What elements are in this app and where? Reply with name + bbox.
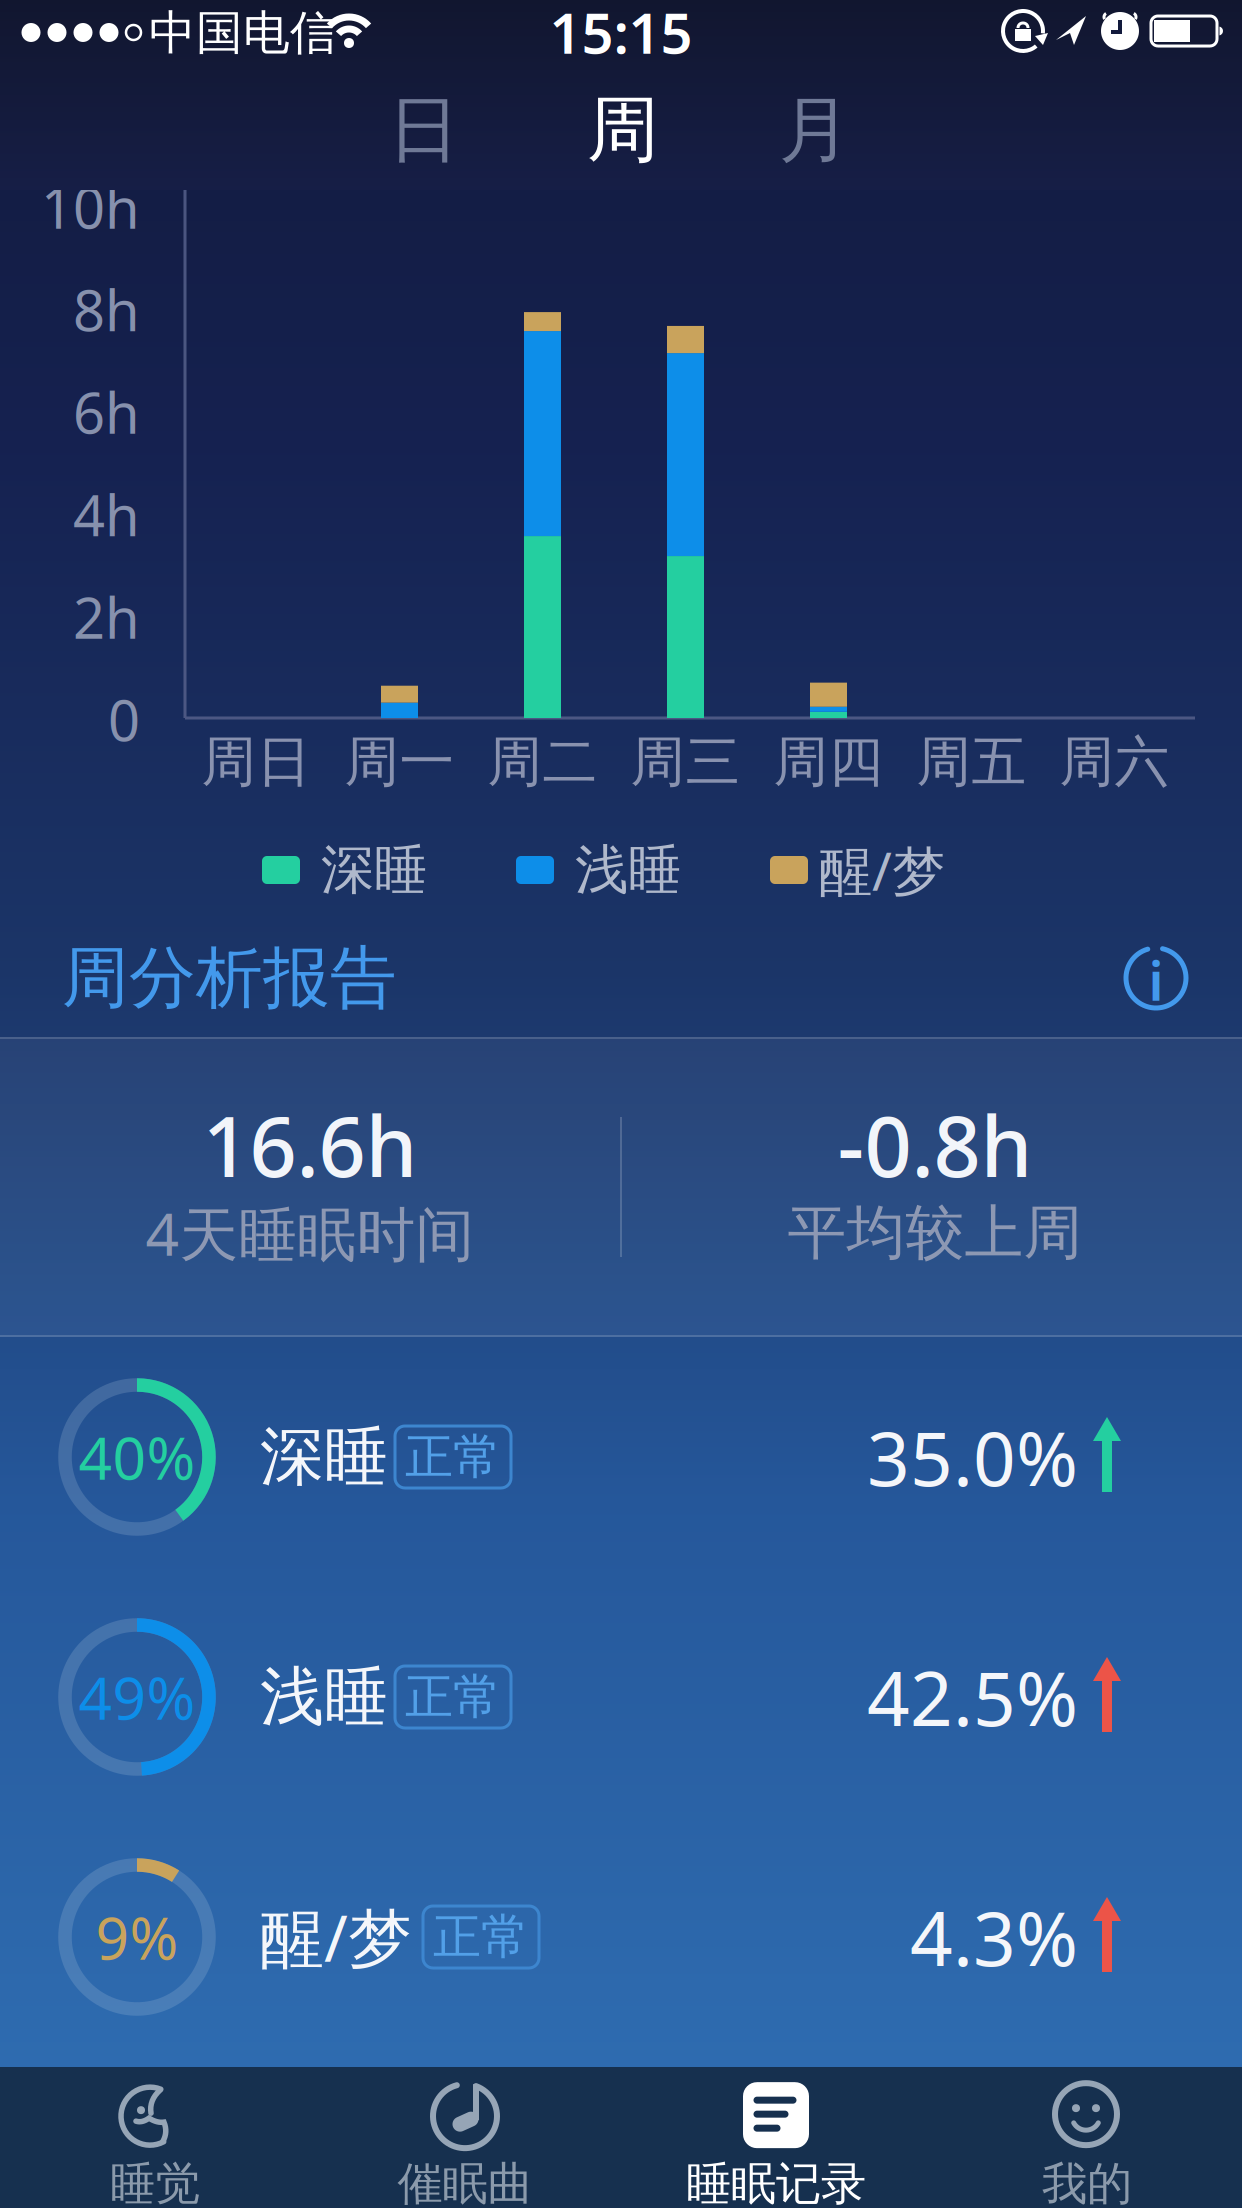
staticText: 49%	[78, 1658, 195, 1736]
staticText: 日	[388, 86, 460, 174]
staticText: 周日	[201, 728, 311, 795]
staticText: 16.6h	[202, 1090, 417, 1200]
staticText: 我的	[1042, 2156, 1132, 2208]
staticText: 月	[779, 86, 851, 174]
staticText: 40%	[78, 1418, 195, 1496]
staticText: 2h	[73, 580, 140, 654]
staticText: 4.3%	[910, 1887, 1078, 1987]
staticText: i	[1148, 945, 1163, 1015]
staticText: 周五	[916, 728, 1026, 795]
staticText: 0	[108, 682, 140, 757]
staticText: 周六	[1059, 728, 1169, 795]
staticText: 平均较上周	[787, 1197, 1082, 1269]
staticText: 4天睡眠时间	[145, 1194, 474, 1272]
staticText: 8h	[73, 272, 140, 347]
staticText: 15:15	[549, 0, 692, 69]
staticText: 醒/梦	[819, 835, 945, 905]
staticText: 9%	[95, 1898, 178, 1976]
staticText: 周	[587, 86, 659, 174]
staticText: 35.0%	[867, 1407, 1078, 1507]
staticText: 周分析报告	[62, 937, 397, 1019]
button[interactable]: 睡觉	[15, 2078, 295, 2208]
staticText: 深睡	[321, 837, 427, 903]
staticText: 正常	[405, 1667, 501, 1726]
staticText: 醒/梦	[260, 1894, 412, 1979]
button[interactable]: 关于周分析报告	[1123, 945, 1189, 1011]
staticText: 催眠曲	[397, 2156, 532, 2208]
staticText: 睡觉	[110, 2156, 200, 2208]
staticText: 6h	[73, 375, 140, 449]
button[interactable]: 我的	[947, 2078, 1227, 2208]
staticText: 周四	[773, 728, 883, 795]
staticText: 周三	[630, 728, 740, 795]
button[interactable]: 催眠曲	[325, 2078, 605, 2208]
staticText: 浅睡	[260, 1658, 388, 1736]
staticText: 周一	[344, 728, 454, 795]
staticText: 10h	[41, 170, 140, 244]
button[interactable]: 睡眠记录	[636, 2078, 916, 2208]
staticText: 正常	[405, 1427, 501, 1486]
button[interactable]: 月	[779, 86, 851, 174]
staticText: 浅睡	[575, 837, 681, 903]
button[interactable]: 日	[388, 86, 460, 174]
staticText: 深睡	[260, 1418, 388, 1496]
staticText: 周二	[487, 728, 597, 795]
button[interactable]: 周	[587, 86, 659, 174]
staticText: -0.8h	[837, 1090, 1032, 1200]
staticText: 4h	[73, 477, 140, 552]
staticText: 正常	[433, 1907, 529, 1966]
staticText: 42.5%	[867, 1647, 1078, 1747]
staticText: 睡眠记录	[686, 2156, 866, 2208]
staticText: 中国电信	[149, 4, 337, 62]
